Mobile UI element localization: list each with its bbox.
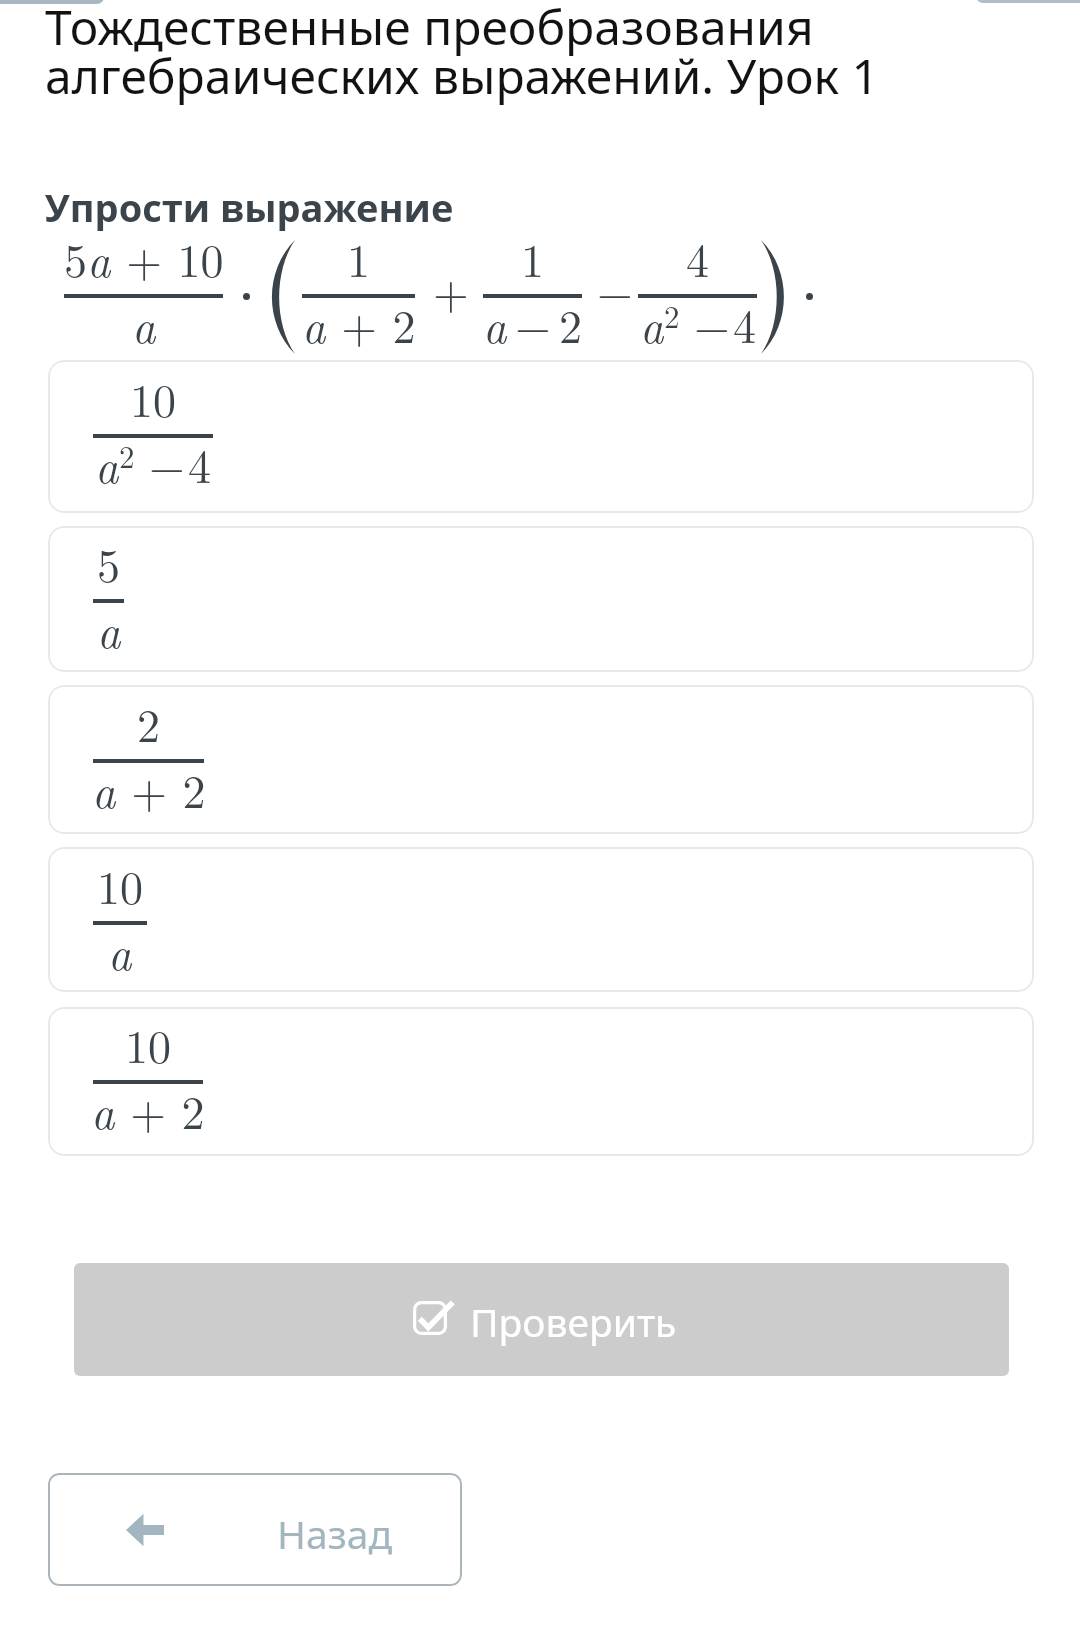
staticText: Упрости выражение bbox=[45, 181, 454, 233]
staticText: − bbox=[149, 431, 185, 496]
staticText: Назад bbox=[277, 1507, 393, 1560]
staticText: a bbox=[87, 225, 111, 290]
staticText: 5 bbox=[64, 225, 87, 290]
staticText: − bbox=[515, 291, 551, 356]
staticText: − bbox=[694, 291, 730, 356]
staticText: a bbox=[95, 431, 119, 496]
staticText: a bbox=[302, 291, 326, 356]
staticText: a bbox=[483, 291, 507, 356]
button[interactable]: Назад bbox=[48, 1473, 462, 1586]
staticText: − bbox=[597, 257, 633, 322]
staticText: 4 bbox=[733, 291, 756, 356]
button[interactable]: 2 bbox=[48, 685, 1034, 834]
staticText: 2 bbox=[137, 690, 160, 755]
staticText: a bbox=[132, 291, 156, 356]
staticText: a bbox=[91, 1077, 115, 1142]
staticText: 4 bbox=[686, 225, 709, 290]
staticText: a bbox=[640, 291, 664, 356]
staticText: Тождественные преобразования алгебраичес… bbox=[45, 0, 879, 109]
button[interactable]: Проверить bbox=[74, 1263, 1009, 1376]
button[interactable]: 10 bbox=[48, 360, 1034, 513]
staticText: 10 bbox=[125, 1011, 171, 1076]
staticText: a bbox=[92, 756, 116, 821]
button[interactable]: 10 bbox=[48, 847, 1034, 992]
staticText: 1 bbox=[347, 225, 370, 290]
staticText: 10 bbox=[130, 365, 176, 430]
staticText: Проверить bbox=[470, 1295, 677, 1348]
staticText: 1 bbox=[521, 225, 544, 290]
button[interactable]: 5 bbox=[48, 526, 1034, 672]
staticText: a bbox=[108, 918, 132, 983]
other: Проверить bbox=[413, 1299, 455, 1335]
staticText: 2 bbox=[119, 433, 135, 477]
staticText: + 2 bbox=[116, 756, 206, 821]
staticText: a bbox=[97, 596, 121, 661]
staticText: 2 bbox=[664, 293, 680, 337]
staticText: 10 bbox=[97, 852, 143, 917]
staticText: + bbox=[433, 257, 469, 322]
staticText: 4 bbox=[188, 431, 211, 496]
staticText: + 2 bbox=[115, 1077, 205, 1142]
button[interactable]: 10 bbox=[48, 1007, 1034, 1156]
other: Назад bbox=[126, 1513, 164, 1547]
staticText: 5 bbox=[97, 530, 120, 595]
staticText: + 2 bbox=[326, 291, 416, 356]
staticText: 2 bbox=[559, 291, 582, 356]
staticText: + 10 bbox=[111, 225, 224, 290]
